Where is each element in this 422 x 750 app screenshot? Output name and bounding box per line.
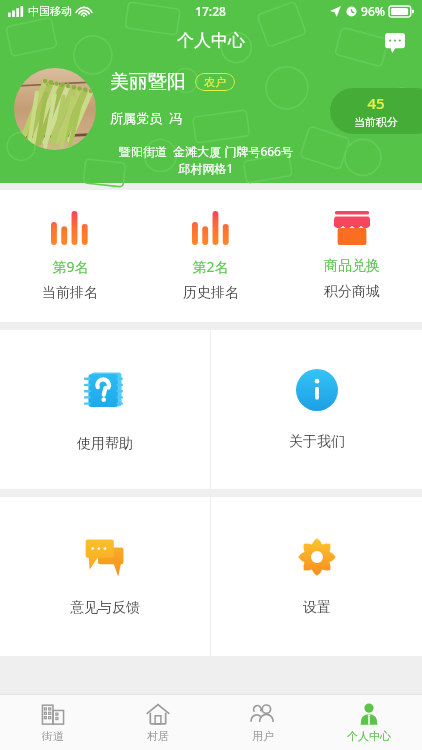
button[interactable]: 第9名 xyxy=(0,190,140,322)
staticText: 商品兑换 xyxy=(324,257,380,275)
staticText: 设置 xyxy=(303,599,331,617)
staticText: 96% xyxy=(361,3,385,19)
button[interactable]: 使用帮助 xyxy=(0,330,210,489)
button[interactable]: 村居 xyxy=(105,695,210,750)
staticText: 个人中心 xyxy=(177,30,245,51)
staticText: 17:28 xyxy=(195,3,226,19)
staticText: 45 xyxy=(367,93,385,113)
staticText: 历史排名 xyxy=(183,284,239,302)
button[interactable]: 第2名 xyxy=(140,190,281,322)
staticText: 个人中心 xyxy=(347,729,391,743)
staticText: 关于我们 xyxy=(289,433,345,451)
staticText: 意见与反馈 xyxy=(70,599,140,617)
staticText: 街道 xyxy=(42,729,64,743)
button[interactable]: 个人中心 xyxy=(316,695,422,750)
button[interactable]: 意见与反馈 xyxy=(0,497,210,656)
staticText: 美丽暨阳 xyxy=(110,70,186,94)
button[interactable]: 设置 xyxy=(211,497,422,656)
button[interactable]: 街道 xyxy=(0,695,105,750)
staticText: 当前排名 xyxy=(42,284,98,302)
staticText: 用户 xyxy=(252,729,274,743)
button[interactable]: 用户 xyxy=(210,695,316,750)
button[interactable]: 关于我们 xyxy=(211,330,422,489)
button[interactable]: Messages xyxy=(380,28,410,58)
button[interactable]: 商品兑换 xyxy=(281,190,422,322)
button[interactable]: 45 xyxy=(330,88,422,134)
staticText: 当前积分 xyxy=(354,115,398,129)
staticText: 第2名 xyxy=(192,257,229,276)
staticText: 所属党员 冯 xyxy=(110,109,182,127)
staticText: 农户 xyxy=(204,75,226,89)
staticText: 中国移动 xyxy=(28,4,72,18)
staticText: 积分商城 xyxy=(324,283,380,301)
staticText: 暨阳街道 金滩大厦 门牌号666号 邱村网格1 xyxy=(110,143,302,176)
staticText: 使用帮助 xyxy=(77,435,133,453)
staticText: 第9名 xyxy=(52,257,89,276)
staticText: 村居 xyxy=(147,729,169,743)
